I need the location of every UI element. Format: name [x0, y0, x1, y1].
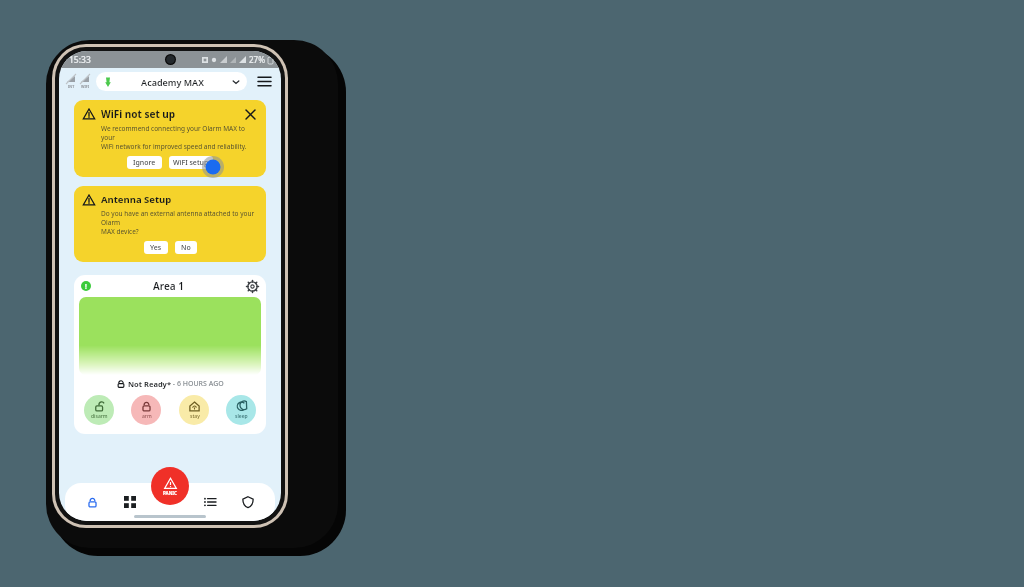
button[interactable]: No [175, 241, 197, 254]
button[interactable]: sleep [226, 395, 256, 425]
button[interactable]: Academy MAX [96, 72, 247, 91]
staticText: WiFi not set up [101, 107, 244, 121]
button[interactable]: Area settings [246, 280, 259, 293]
button[interactable]: arm [131, 395, 161, 425]
staticText: - 6 HOURS AGO [171, 379, 224, 389]
staticText: WiFI setup [173, 158, 209, 168]
button[interactable]: disarm [84, 395, 114, 425]
staticText: disarm [91, 413, 108, 420]
staticText: 27% [249, 54, 265, 65]
button[interactable]: Devices [115, 485, 145, 519]
button[interactable]: stay [179, 395, 209, 425]
staticText: Do you have an external antenna attached… [101, 209, 257, 236]
button[interactable]: Panic [151, 467, 189, 505]
staticText: Antenna Setup [101, 193, 172, 206]
button[interactable]: Menu [254, 71, 274, 91]
staticText: Academy MAX [113, 76, 232, 88]
staticText: ! [85, 282, 87, 291]
staticText: No [181, 243, 191, 253]
staticText: WIFI [81, 84, 90, 89]
staticText: INT [68, 84, 75, 89]
button[interactable]: Yes [144, 241, 168, 254]
staticText: Yes [150, 243, 162, 253]
button[interactable]: WiFI setup [169, 156, 213, 169]
button[interactable]: Security [233, 485, 263, 519]
button[interactable]: Events [195, 485, 225, 519]
staticText: PANIC [163, 490, 177, 496]
staticText: 15:33 [69, 54, 91, 66]
staticText: sleep [235, 413, 248, 420]
button[interactable]: Areas [77, 485, 107, 519]
staticText: Area 1 [91, 279, 246, 293]
staticText: Not Ready* [128, 379, 171, 389]
staticText: arm [142, 413, 152, 420]
button[interactable]: Dismiss [244, 108, 257, 121]
staticText: Ignore [133, 158, 156, 168]
button[interactable]: Ignore [127, 156, 162, 169]
staticText: We recommend connecting your Olarm MAX t… [101, 124, 257, 151]
staticText: stay [190, 413, 200, 420]
